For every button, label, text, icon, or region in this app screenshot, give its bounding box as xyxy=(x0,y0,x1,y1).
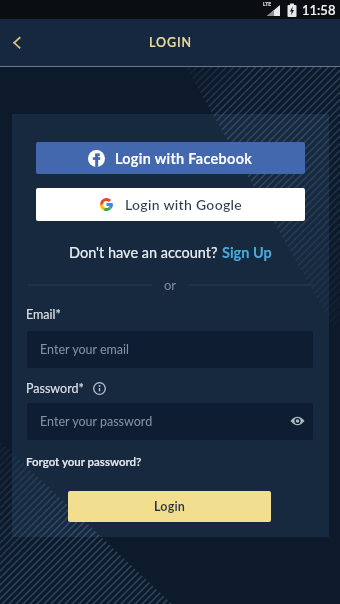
staticText: Login xyxy=(154,499,186,514)
staticText: or xyxy=(164,277,177,293)
button[interactable]: Login with Facebook xyxy=(36,142,305,174)
staticText: Enter your email xyxy=(40,342,130,357)
button[interactable]: Forgot your password? xyxy=(26,455,142,469)
staticText: Login with Google xyxy=(125,196,242,213)
button[interactable]: Enter your email xyxy=(27,331,313,368)
staticText: Sign Up xyxy=(222,244,272,261)
staticText: Login with Facebook xyxy=(115,150,253,167)
button[interactable]: Login xyxy=(68,491,271,522)
staticText: Email* xyxy=(26,307,61,322)
staticText: Don't have an account? xyxy=(69,244,222,261)
staticText: Password* xyxy=(26,381,84,396)
button[interactable]: Login with Google xyxy=(36,188,305,221)
button[interactable] xyxy=(289,413,305,429)
button[interactable]: Don't have an account? xyxy=(12,243,329,261)
button[interactable]: Enter your password xyxy=(27,403,313,440)
staticText: LOGIN xyxy=(149,35,192,50)
staticText: LTE xyxy=(263,1,272,7)
button[interactable] xyxy=(5,31,28,54)
staticText: Enter your password xyxy=(40,414,153,429)
staticText: 11:58 xyxy=(302,2,336,18)
